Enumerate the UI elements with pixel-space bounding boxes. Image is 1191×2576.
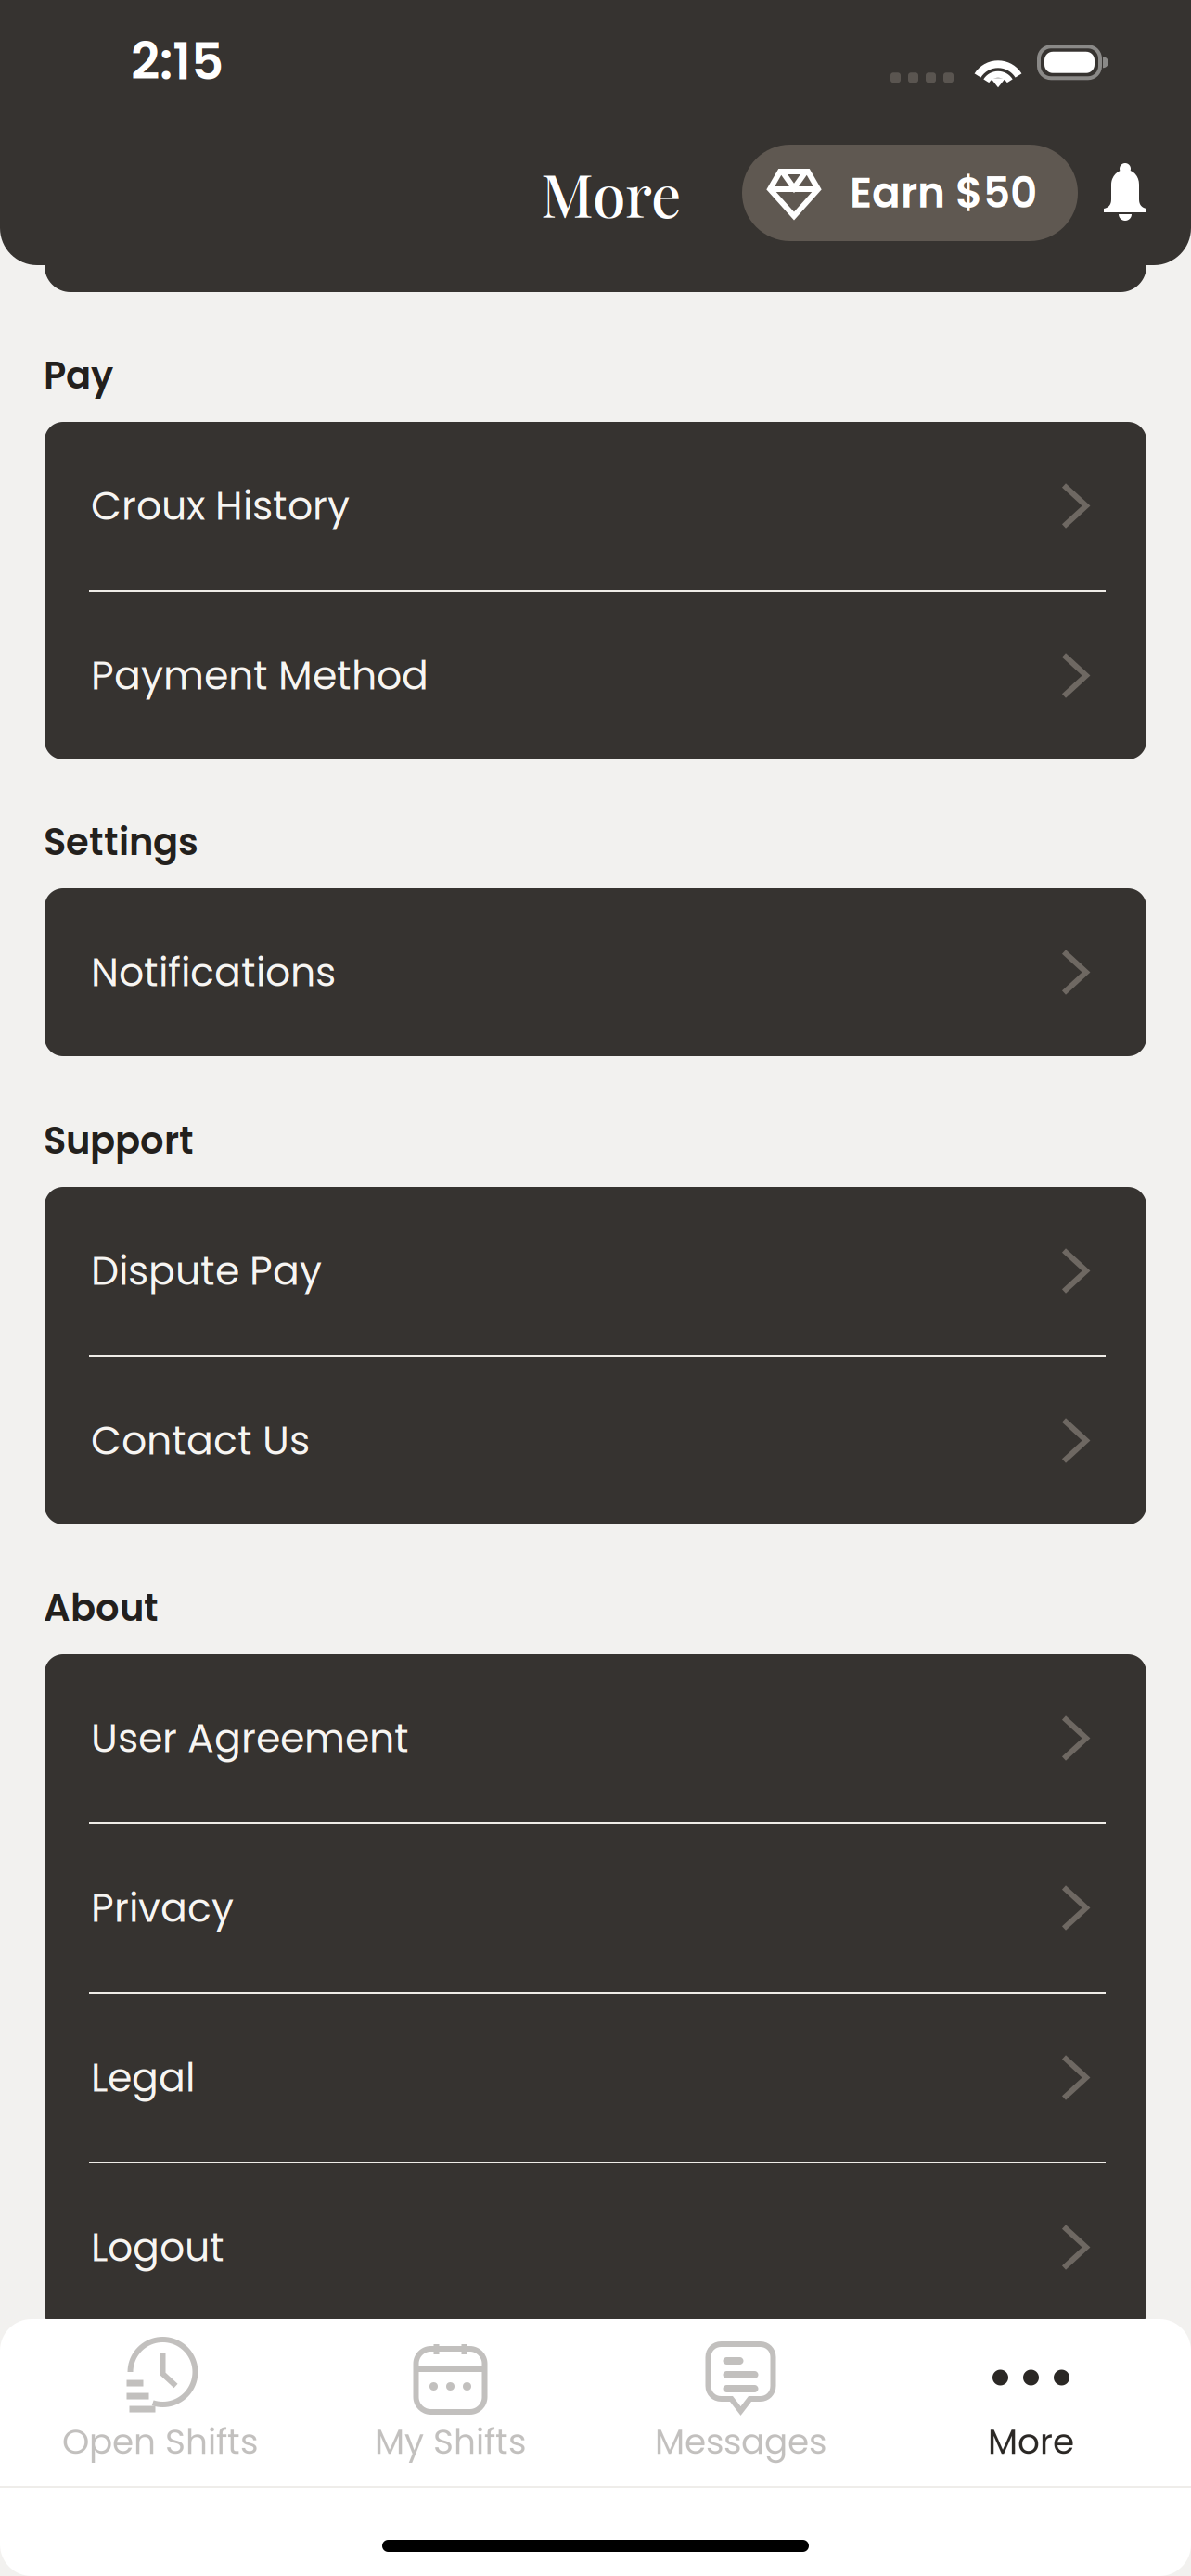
button[interactable]: Open Shifts bbox=[15, 2319, 305, 2486]
button[interactable]: Notifications bbox=[45, 888, 1146, 1056]
staticText: 2:15 bbox=[131, 26, 224, 97]
staticText: Dispute Pay bbox=[91, 1243, 322, 1298]
button[interactable]: Privacy bbox=[45, 1824, 1146, 1992]
button[interactable]: Contact Us bbox=[45, 1357, 1146, 1524]
button[interactable]: Notifications bbox=[1096, 157, 1154, 229]
staticText: Croux History bbox=[91, 478, 350, 533]
staticText: Legal bbox=[91, 2050, 195, 2105]
staticText: About bbox=[44, 1582, 159, 1634]
staticText: Support bbox=[44, 1115, 194, 1167]
staticText: Notifications bbox=[91, 945, 336, 1000]
staticText: Pay bbox=[44, 350, 113, 402]
button[interactable]: Croux History bbox=[45, 422, 1146, 590]
button[interactable]: Dispute Pay bbox=[45, 1187, 1146, 1355]
staticText: Payment Method bbox=[91, 648, 429, 703]
button[interactable]: More bbox=[886, 2319, 1176, 2486]
staticText: Settings bbox=[44, 816, 198, 868]
staticText: More bbox=[988, 2417, 1074, 2466]
staticText: Logout bbox=[91, 2220, 224, 2275]
staticText: Earn $50 bbox=[850, 163, 1037, 222]
staticText: More bbox=[541, 153, 681, 232]
staticText: My Shifts bbox=[375, 2417, 526, 2466]
button[interactable]: User Agreement bbox=[45, 1654, 1146, 1822]
button[interactable]: Earn $50 bbox=[742, 145, 1078, 241]
staticText: Open Shifts bbox=[62, 2417, 258, 2466]
button[interactable]: Legal bbox=[45, 1994, 1146, 2162]
button[interactable]: Payment Method bbox=[45, 592, 1146, 759]
staticText: Contact Us bbox=[91, 1413, 310, 1468]
staticText: User Agreement bbox=[91, 1710, 409, 1766]
staticText: Privacy bbox=[91, 1880, 234, 1936]
button[interactable]: Logout bbox=[45, 2163, 1146, 2331]
button[interactable]: Messages bbox=[595, 2319, 886, 2486]
button[interactable]: My Shifts bbox=[305, 2319, 595, 2486]
staticText: Messages bbox=[655, 2417, 826, 2466]
